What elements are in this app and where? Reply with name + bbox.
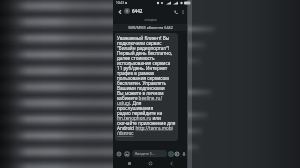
button[interactable]: Home [146,159,155,168]
button[interactable]: Введите S... [132,150,167,157]
button[interactable]: More options [180,9,185,14]
button[interactable]: Back [116,8,123,15]
button[interactable]: SIM card [168,151,173,156]
button[interactable]: Voice input [181,151,186,156]
staticText: 6442 [132,8,143,14]
button[interactable]: Emoji [116,151,122,157]
staticText: SMS/MMS абонента 6442 [128,25,173,30]
staticText: Введите S... [135,151,155,156]
button[interactable]: Attach image [124,151,130,157]
button[interactable]: Call [172,8,179,15]
staticText: Уважаемый Клиент! Вы подключили сервис "… [117,35,176,137]
staticText: 10:43 [116,1,124,5]
staticText: сегодня [113,18,188,22]
button[interactable]: Recents [125,159,134,168]
button[interactable]: Send [174,151,180,157]
button[interactable]: Back [167,159,176,168]
button[interactable]: Уважаемый Клиент! Вы подключили сервис "… [115,33,178,141]
